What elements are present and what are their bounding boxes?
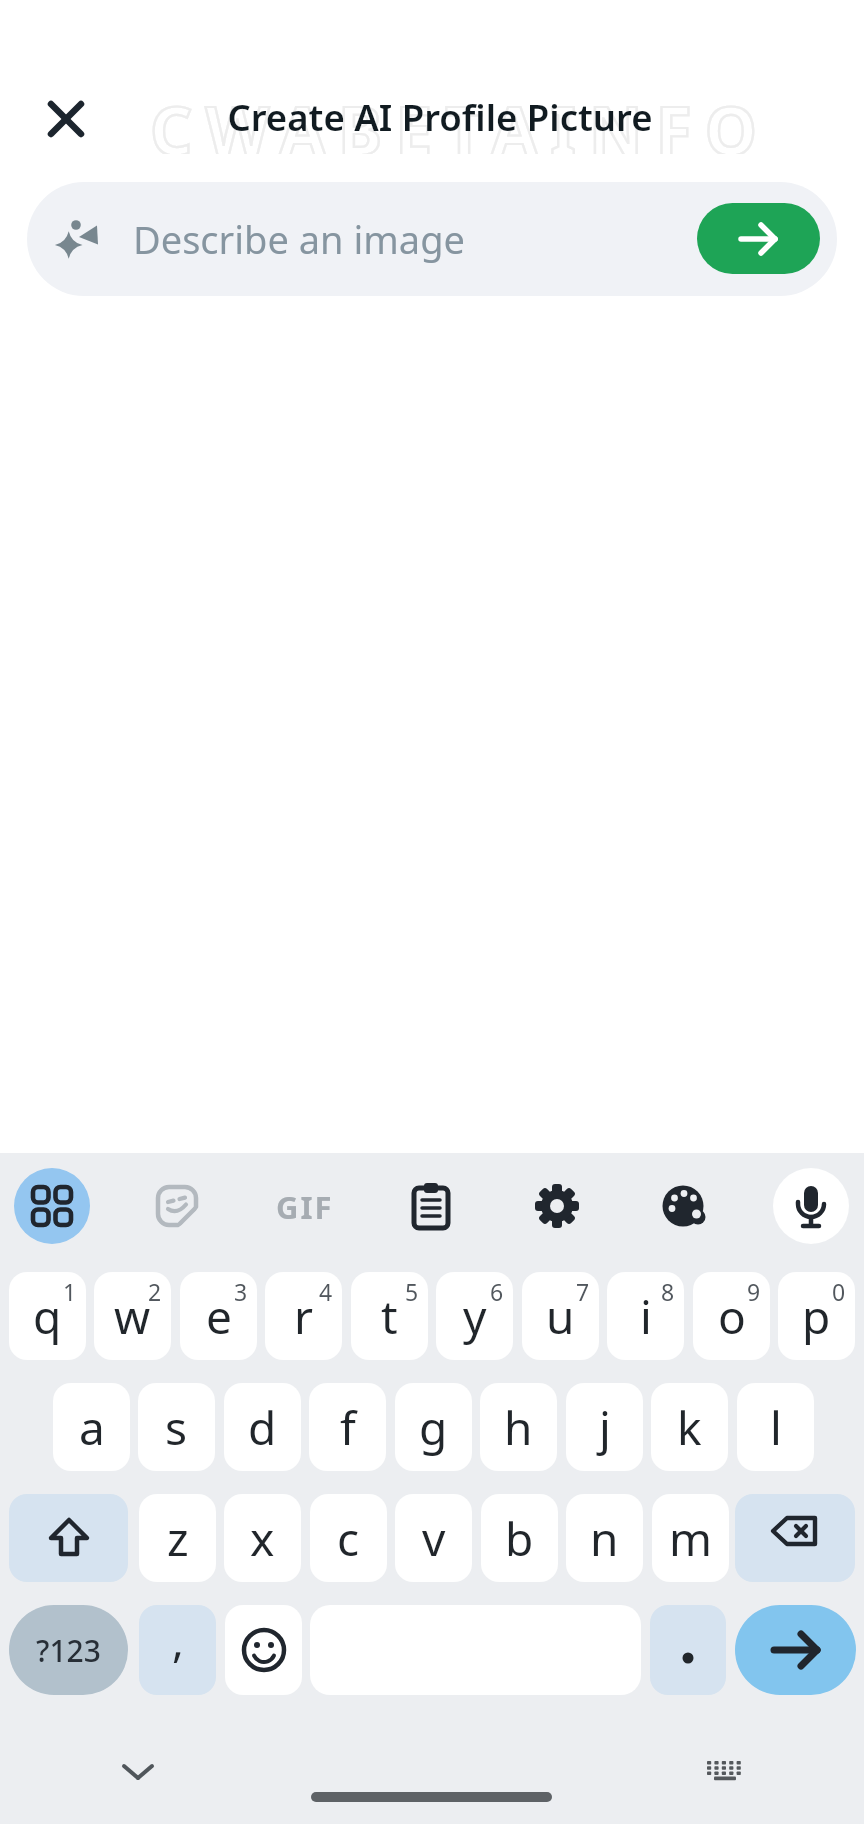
button[interactable] [660, 1182, 708, 1230]
button[interactable] [735, 1494, 855, 1582]
staticText: 9 [747, 1276, 761, 1307]
button[interactable]: h [480, 1383, 557, 1471]
button[interactable] [704, 1760, 746, 1782]
staticText: 0 [832, 1276, 846, 1307]
staticText: 8 [661, 1276, 675, 1307]
staticText: 1 [63, 1276, 77, 1307]
staticText: b [505, 1507, 534, 1570]
button[interactable] [40, 93, 92, 145]
staticText: m [669, 1507, 713, 1570]
button[interactable]: z [139, 1494, 216, 1582]
staticText: i [640, 1285, 652, 1348]
button[interactable]: s [138, 1383, 215, 1471]
staticText: y [463, 1285, 487, 1348]
staticText: GIF [276, 1186, 334, 1226]
button[interactable] [9, 1494, 128, 1582]
staticText: g [419, 1396, 448, 1459]
button[interactable]: x [224, 1494, 301, 1582]
button[interactable]: ?123 [9, 1605, 128, 1695]
button[interactable] [697, 203, 820, 274]
button[interactable]: GIF [262, 1186, 347, 1226]
staticText: e [206, 1285, 232, 1348]
button[interactable]: e [180, 1272, 257, 1360]
button[interactable]: g [395, 1383, 472, 1471]
staticText: 6 [490, 1276, 504, 1307]
staticText: Describe an image [133, 213, 465, 265]
button[interactable]: p [778, 1272, 855, 1360]
staticText: x [250, 1507, 275, 1570]
button[interactable]: b [481, 1494, 558, 1582]
staticText: u [546, 1285, 575, 1348]
button[interactable]: r [265, 1272, 342, 1360]
staticText: l [770, 1396, 782, 1459]
staticText: CWABETAINFO [107, 84, 813, 154]
staticText: d [248, 1396, 277, 1459]
staticText: 3 [234, 1276, 248, 1307]
button[interactable] [225, 1605, 302, 1695]
button[interactable] [533, 1182, 581, 1230]
staticText: t [381, 1285, 398, 1348]
button[interactable] [773, 1168, 849, 1244]
button[interactable]: f [309, 1383, 386, 1471]
staticText: h [504, 1396, 533, 1459]
staticText: q [33, 1285, 62, 1348]
button[interactable] [650, 1605, 726, 1695]
staticText: s [165, 1396, 188, 1459]
staticText: p [802, 1285, 831, 1348]
staticText: a [79, 1396, 105, 1459]
button[interactable] [27, 182, 837, 296]
staticText: j [599, 1396, 611, 1459]
staticText: f [340, 1396, 356, 1459]
staticText: v [422, 1507, 446, 1570]
button[interactable]: , [139, 1605, 216, 1695]
button[interactable] [14, 1168, 90, 1244]
button[interactable]: c [310, 1494, 387, 1582]
button[interactable] [153, 1182, 201, 1230]
button[interactable]: d [224, 1383, 301, 1471]
staticText: 7 [576, 1276, 590, 1307]
button[interactable]: t [351, 1272, 428, 1360]
staticText: z [167, 1507, 189, 1570]
button[interactable] [735, 1605, 856, 1695]
button[interactable]: m [652, 1494, 729, 1582]
staticText: , [172, 1610, 184, 1670]
button[interactable]: q [9, 1272, 86, 1360]
staticText: n [590, 1507, 619, 1570]
staticText: k [677, 1396, 702, 1459]
button[interactable]: i [607, 1272, 684, 1360]
button[interactable]: j [566, 1383, 643, 1471]
button[interactable]: l [737, 1383, 814, 1471]
button[interactable]: u [522, 1272, 599, 1360]
staticText: 5 [405, 1276, 419, 1307]
staticText: w [114, 1285, 151, 1348]
staticText: Create AI Profile Picture [140, 92, 740, 146]
staticText: r [294, 1285, 313, 1348]
button[interactable]: v [395, 1494, 472, 1582]
staticText: o [718, 1285, 746, 1348]
button[interactable] [114, 1753, 162, 1789]
staticText: c [337, 1507, 360, 1570]
button[interactable]: y [436, 1272, 513, 1360]
button[interactable]: o [693, 1272, 770, 1360]
button[interactable]: k [651, 1383, 728, 1471]
staticText: 4 [319, 1276, 333, 1307]
staticText: 2 [148, 1276, 162, 1307]
button[interactable]: a [53, 1383, 130, 1471]
button[interactable]: w [94, 1272, 171, 1360]
button[interactable] [407, 1182, 455, 1230]
button[interactable]: n [566, 1494, 643, 1582]
staticText: ?123 [36, 1630, 101, 1671]
